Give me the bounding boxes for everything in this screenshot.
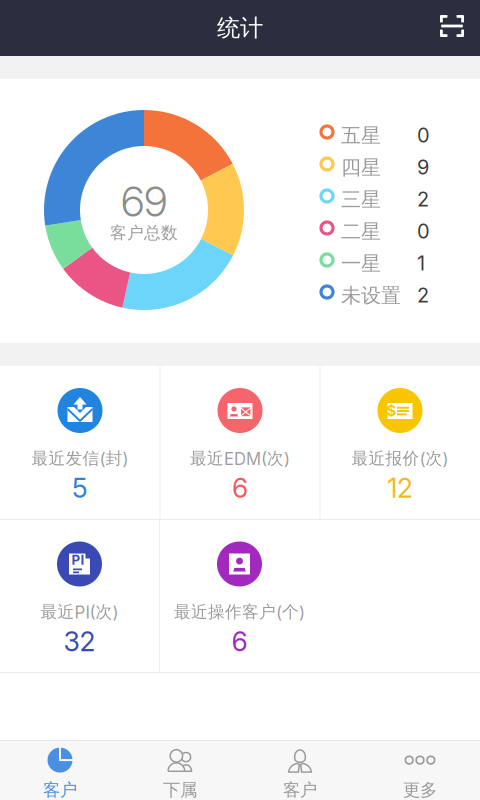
staticText: 0	[417, 219, 430, 243]
staticText: 9	[417, 155, 429, 179]
staticText: 最近操作客户(个)	[174, 601, 305, 622]
staticText: 五星	[341, 123, 381, 148]
staticText: 12	[387, 472, 413, 504]
staticText: 6	[232, 472, 248, 504]
staticText: $	[387, 402, 397, 419]
staticText: 三星	[341, 187, 381, 212]
button[interactable]: $	[320, 366, 479, 519]
button[interactable]: 更多	[360, 740, 480, 800]
staticText: 更多	[403, 779, 437, 800]
staticText: 客户总数	[110, 222, 178, 243]
button[interactable]: 最近发信(封)	[0, 366, 159, 519]
button[interactable]: 客户	[240, 740, 360, 800]
staticText: 二星	[341, 219, 381, 244]
staticText: 5	[72, 472, 88, 504]
staticText: 一星	[341, 251, 381, 276]
button[interactable]: 最近EDM(次)	[160, 366, 319, 519]
button[interactable]: Scan	[424, 0, 480, 56]
staticText: 未设置	[341, 283, 401, 308]
staticText: 最近报价(次)	[351, 448, 448, 469]
staticText: 最近发信(封)	[31, 448, 128, 469]
button[interactable]: 客户	[0, 740, 120, 800]
button[interactable]: 下属	[120, 740, 240, 800]
button[interactable]: 最近操作客户(个)	[160, 519, 319, 672]
staticText: 6	[231, 625, 247, 658]
staticText: 0	[417, 123, 430, 147]
staticText: 下属	[163, 779, 197, 800]
staticText: 最近EDM(次)	[190, 448, 290, 469]
staticText: 四星	[341, 155, 381, 180]
staticText: 1	[417, 251, 425, 275]
staticText: 2	[417, 283, 429, 307]
staticText: 69	[121, 176, 167, 226]
staticText: PI	[71, 552, 84, 568]
staticText: 最近PI(次)	[40, 601, 118, 622]
staticText: 客户	[43, 779, 77, 800]
staticText: 2	[417, 187, 429, 211]
button[interactable]: PI	[0, 519, 159, 672]
staticText: 客户	[283, 779, 317, 800]
staticText: 32	[63, 625, 95, 658]
staticText: 统计	[217, 13, 263, 43]
